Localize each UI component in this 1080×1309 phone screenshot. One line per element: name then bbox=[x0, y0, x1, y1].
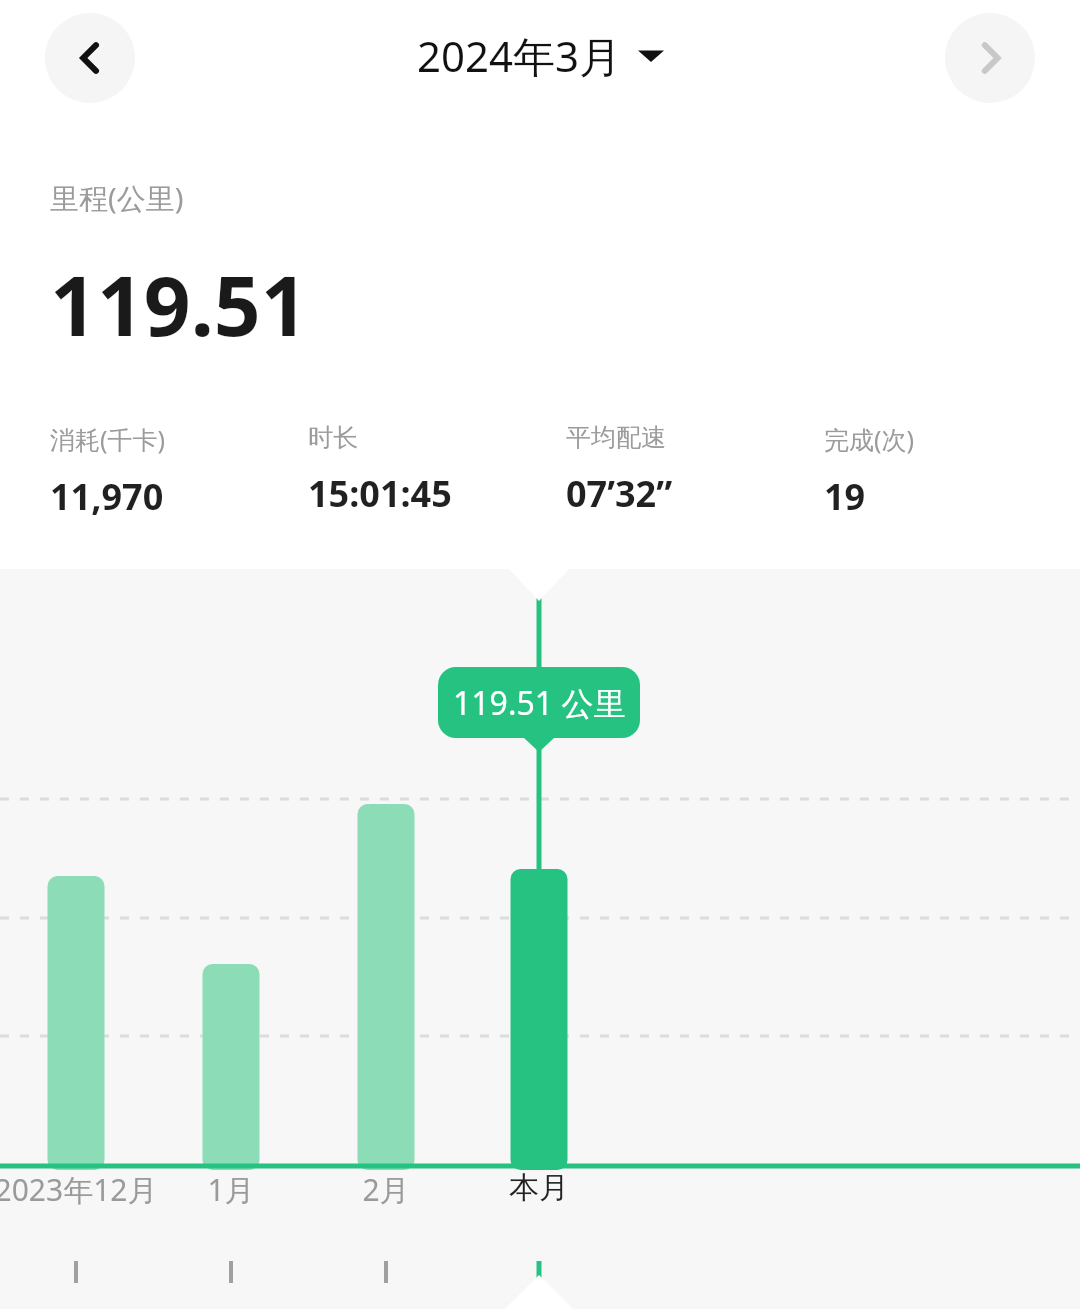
staticText: 2月 bbox=[276, 1169, 496, 1210]
staticText: 07’32” bbox=[566, 469, 673, 518]
button[interactable]: Next month bbox=[945, 13, 1035, 103]
button[interactable]: 2024年3月 bbox=[417, 27, 664, 84]
staticText: 时长 bbox=[308, 422, 358, 453]
staticText: 19 bbox=[824, 472, 866, 521]
staticText: 11,970 bbox=[50, 472, 164, 521]
button[interactable]: 119.51 公里 bbox=[438, 667, 640, 738]
staticText: 完成(次) bbox=[824, 422, 915, 456]
staticText: 消耗(千卡) bbox=[50, 422, 166, 456]
staticText: 平均配速 bbox=[566, 422, 666, 453]
staticText: 2024年3月 bbox=[417, 27, 622, 84]
staticText: 里程(公里) bbox=[50, 178, 184, 218]
staticText: 119.51 bbox=[50, 248, 308, 360]
staticText: 119.51 公里 bbox=[453, 681, 626, 725]
staticText: 本月 bbox=[429, 1169, 649, 1207]
staticText: 15:01:45 bbox=[308, 469, 452, 518]
staticText: 2023年12月 bbox=[0, 1169, 186, 1210]
button[interactable]: Previous month bbox=[45, 13, 135, 103]
staticText: 1月 bbox=[121, 1169, 341, 1210]
